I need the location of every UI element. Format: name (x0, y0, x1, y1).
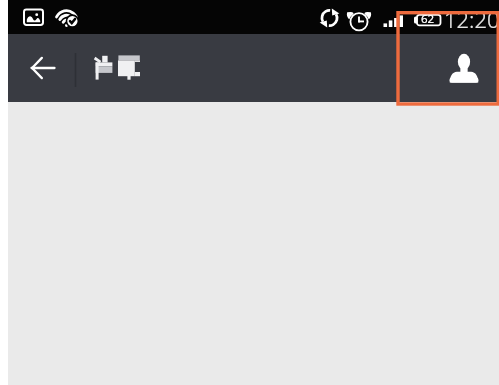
staticText: 62 (421, 11, 435, 27)
button[interactable]: Account (440, 44, 488, 92)
button[interactable]: Home (86, 44, 148, 92)
button[interactable]: Back (19, 44, 67, 92)
staticText: 12:20 (444, 4, 499, 34)
